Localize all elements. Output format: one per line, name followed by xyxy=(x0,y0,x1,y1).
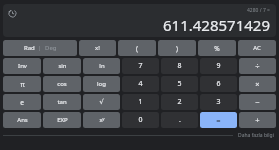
button[interactable]: Daha fazla bilgi xyxy=(233,131,276,140)
staticText: e xyxy=(20,98,24,107)
staticText: − xyxy=(255,97,260,107)
staticText: 0 xyxy=(138,115,143,125)
staticText: x! xyxy=(95,44,100,52)
staticText: AC xyxy=(253,44,261,52)
button[interactable]: log xyxy=(83,76,120,92)
button[interactable]: x! xyxy=(79,40,116,56)
button[interactable]: ( xyxy=(118,40,156,56)
staticText: 4 xyxy=(138,79,143,89)
staticText: | xyxy=(35,44,45,52)
button[interactable]: e xyxy=(3,94,41,110)
staticText: tan xyxy=(57,98,67,106)
staticText: EXP xyxy=(57,116,68,124)
staticText: xʸ xyxy=(99,116,105,124)
button[interactable]: 1 xyxy=(122,94,159,110)
button[interactable]: sin xyxy=(43,58,81,74)
button[interactable]: xʸ xyxy=(83,112,120,128)
button[interactable]: ln xyxy=(83,58,120,74)
staticText: π xyxy=(20,80,25,89)
button[interactable]: 6 xyxy=(200,76,237,92)
staticText: . xyxy=(179,115,181,125)
staticText: Daha fazla bilgi xyxy=(238,132,274,139)
button[interactable]: tan xyxy=(43,94,81,110)
staticText: 611.428571429 xyxy=(163,15,270,35)
button[interactable]: 3 xyxy=(200,94,237,110)
button[interactable]: 2 xyxy=(161,94,198,110)
staticText: = xyxy=(216,115,221,125)
staticText: × xyxy=(255,79,260,89)
button[interactable]: 7 xyxy=(122,58,159,74)
button[interactable]: 0 xyxy=(122,112,159,128)
button[interactable]: Ans xyxy=(3,112,41,128)
button[interactable]: Inv xyxy=(3,58,41,74)
staticText: Ans xyxy=(17,116,28,124)
staticText: ln xyxy=(99,62,105,70)
staticText: sin xyxy=(58,62,67,70)
staticText: 5 xyxy=(177,79,182,89)
staticText: + xyxy=(255,115,260,125)
button[interactable]: 4 xyxy=(122,76,159,92)
staticText: Rad xyxy=(24,44,35,52)
staticText: ) xyxy=(176,44,178,53)
button[interactable]: + xyxy=(239,112,276,128)
staticText: Deg xyxy=(45,44,57,52)
staticText: ( xyxy=(136,44,138,53)
staticText: 2 xyxy=(177,97,182,107)
staticText: 4280 / 7 = xyxy=(247,7,270,14)
staticText: 3 xyxy=(216,97,221,107)
staticText: Inv xyxy=(18,62,27,70)
staticText: 8 xyxy=(177,61,182,71)
button[interactable]: 9 xyxy=(200,58,237,74)
button[interactable]: ÷ xyxy=(239,58,276,74)
staticText: cos xyxy=(57,80,67,88)
button[interactable]: π xyxy=(3,76,41,92)
staticText: log xyxy=(97,80,106,88)
button[interactable]: Rad xyxy=(3,40,77,56)
staticText: 6 xyxy=(216,79,221,89)
button[interactable]: % xyxy=(198,40,236,56)
staticText: ÷ xyxy=(255,61,260,71)
staticText: 7 xyxy=(138,61,143,71)
staticText: 1 xyxy=(138,97,143,107)
button[interactable]: EXP xyxy=(43,112,81,128)
button[interactable]: 8 xyxy=(161,58,198,74)
button[interactable]: ) xyxy=(158,40,196,56)
button[interactable]: AC xyxy=(238,40,276,56)
button[interactable]: History xyxy=(8,9,17,18)
staticText: 9 xyxy=(216,61,221,71)
button[interactable]: × xyxy=(239,76,276,92)
button[interactable]: 5 xyxy=(161,76,198,92)
staticText: % xyxy=(214,44,220,53)
button[interactable]: . xyxy=(161,112,198,128)
button[interactable]: cos xyxy=(43,76,81,92)
button[interactable]: − xyxy=(239,94,276,110)
button[interactable]: √ xyxy=(83,94,120,110)
staticText: √ xyxy=(99,98,104,106)
button[interactable]: = xyxy=(200,112,237,128)
